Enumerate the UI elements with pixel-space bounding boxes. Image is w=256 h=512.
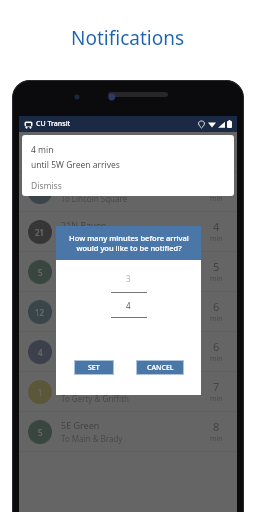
staticText: 5W Green <box>61 259 103 271</box>
staticText: 7 <box>213 379 220 394</box>
staticText: How many minutes before arrival would yo… <box>69 233 189 253</box>
button[interactable]: 12 <box>19 292 237 331</box>
button[interactable]: Dismiss <box>31 180 62 192</box>
staticText: 12 <box>35 187 45 198</box>
staticText: SET <box>88 363 100 373</box>
staticText: 2 <box>38 147 43 158</box>
button[interactable]: 4 <box>19 332 237 371</box>
staticText: 4 <box>126 300 131 311</box>
staticText: 1 <box>38 387 43 398</box>
staticText: To Illinois Terminal <box>61 313 132 324</box>
staticText: To Gerty & Griffith <box>61 393 130 404</box>
staticText: CU Transit <box>36 119 71 129</box>
staticText: 4 <box>213 219 220 234</box>
staticText: min <box>210 314 223 324</box>
staticText: 5 <box>38 427 43 438</box>
staticText: 3 <box>126 273 131 284</box>
button[interactable]: 21 <box>19 212 237 251</box>
staticText: until 5W Green arrives <box>31 159 120 171</box>
staticText: To Lincoln Square <box>61 153 128 164</box>
staticText: To Main & Brady <box>61 433 123 444</box>
button[interactable]: 12 <box>19 172 237 211</box>
staticText: min <box>210 274 223 284</box>
staticText: To Illinois Terminal <box>61 273 132 284</box>
staticText: min <box>210 394 223 404</box>
button[interactable]: 4 min <box>22 135 234 196</box>
staticText: 6 <box>213 339 220 354</box>
staticText: To Lincoln Square <box>61 193 128 204</box>
staticText: 21 <box>35 227 45 238</box>
staticText: To Round Barn Road <box>61 353 138 364</box>
button[interactable]: SET <box>74 360 114 375</box>
button[interactable]: CANCEL <box>136 360 184 375</box>
button[interactable]: 5 <box>19 252 237 291</box>
staticText: min <box>210 194 223 204</box>
staticText: Notifications <box>71 25 185 51</box>
staticText: 12 <box>35 307 45 318</box>
staticText: 6 <box>213 299 220 314</box>
staticText: 5 <box>213 259 220 274</box>
button[interactable]: 1 <box>19 372 237 411</box>
staticText: To Illinois Terminal <box>61 233 132 244</box>
staticText: 21N Raven <box>61 219 107 231</box>
button[interactable]: 2 <box>19 132 237 171</box>
staticText: min <box>210 434 223 444</box>
staticText: min <box>210 354 223 364</box>
staticText: 5E Green <box>61 419 100 431</box>
button[interactable]: 5 <box>19 412 237 451</box>
staticText: min <box>210 234 223 244</box>
staticText: 4 min <box>31 144 54 156</box>
staticText: Dismiss <box>31 180 62 192</box>
staticText: 5 <box>38 267 43 278</box>
staticText: 8 <box>213 419 220 434</box>
staticText: CANCEL <box>147 363 174 373</box>
staticText: 4 <box>38 347 43 358</box>
